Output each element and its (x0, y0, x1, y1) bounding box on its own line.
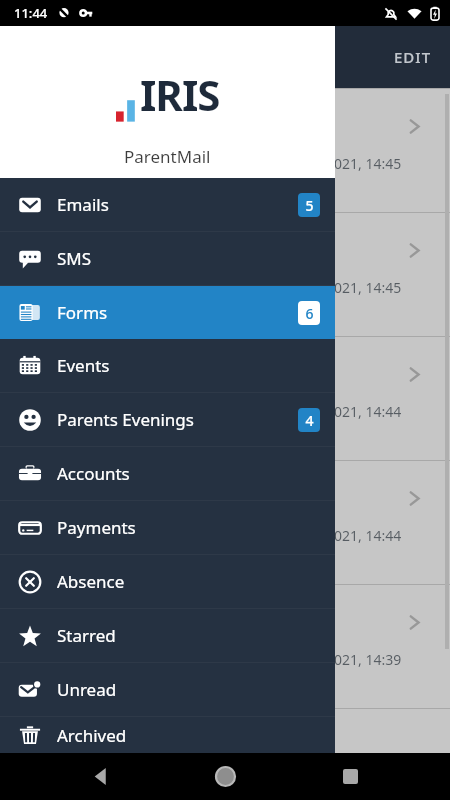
button[interactable]: Forms (0, 286, 335, 339)
button[interactable]: 2021, 14:44 (0, 336, 450, 460)
staticText: Accounts (57, 462, 130, 485)
button[interactable]: Home (201, 753, 249, 800)
staticText: EDIT (394, 47, 432, 67)
staticText: SMS (57, 247, 92, 270)
staticText: 2021, 14:44 (326, 402, 402, 421)
button[interactable]: Accounts (0, 447, 335, 500)
staticText: ParentMail (124, 145, 211, 168)
staticText: IRIS (140, 66, 220, 123)
staticText: Events (57, 354, 110, 377)
button[interactable]: SMS (0, 232, 335, 285)
staticText: Archived (57, 724, 127, 747)
staticText: Starred (57, 624, 116, 647)
button[interactable]: Back (77, 753, 125, 800)
button[interactable]: 2021, 14:45 (0, 88, 450, 212)
staticText: 5 (305, 196, 314, 215)
staticText: 6 (305, 304, 314, 323)
button[interactable]: 2021, 14:44 (0, 460, 450, 584)
button[interactable]: Unread (0, 663, 335, 716)
button[interactable] (0, 708, 450, 753)
button[interactable]: Recents (326, 753, 374, 800)
button[interactable]: Events (0, 339, 335, 392)
staticText: 2021, 14:45 (326, 278, 402, 297)
staticText: 11:44 (14, 4, 48, 22)
staticText: Absence (57, 570, 125, 593)
button[interactable]: Payments (0, 501, 335, 554)
button[interactable]: Starred (0, 609, 335, 662)
button[interactable]: 2021, 14:39 (0, 584, 450, 708)
button[interactable]: EDIT (376, 37, 450, 77)
staticText: 4 (305, 411, 314, 430)
staticText: 2021, 14:45 (326, 154, 402, 173)
staticText: Payments (57, 516, 136, 539)
button[interactable]: Emails (0, 178, 335, 231)
button[interactable]: Parents Evenings (0, 393, 335, 446)
staticText: Parents Evenings (57, 408, 194, 431)
button[interactable]: 2021, 14:45 (0, 212, 450, 336)
staticText: 2021, 14:44 (326, 526, 402, 545)
button[interactable]: Archived (0, 717, 335, 753)
staticText: Emails (57, 193, 109, 216)
staticText: Unread (57, 678, 117, 701)
staticText: 2021, 14:39 (326, 650, 402, 669)
button[interactable]: Absence (0, 555, 335, 608)
staticText: Forms (57, 301, 108, 324)
